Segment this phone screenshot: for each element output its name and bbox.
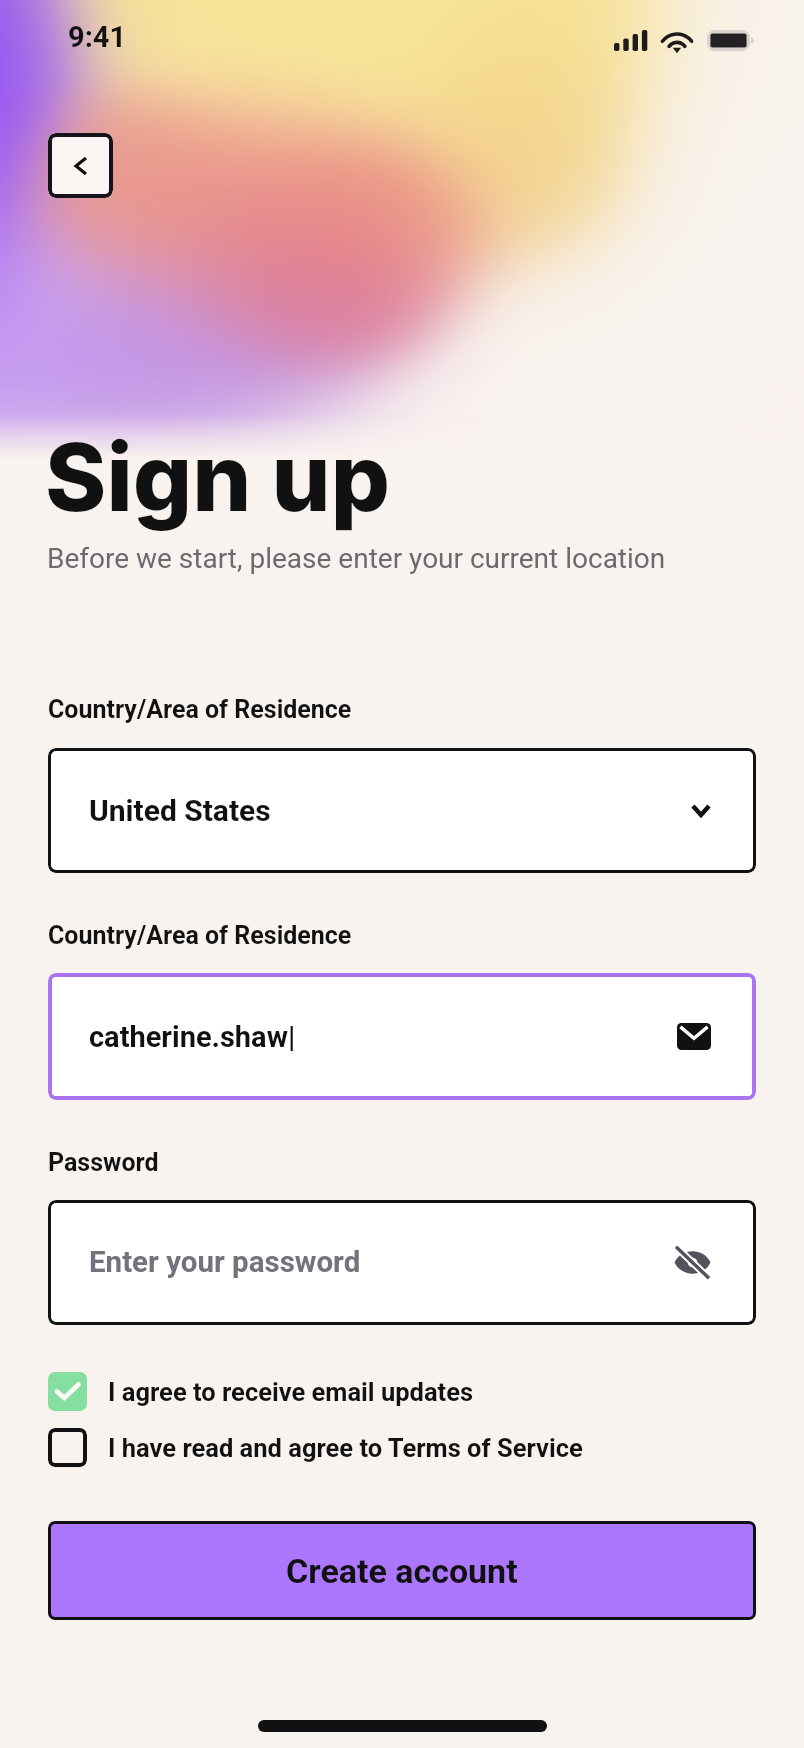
other: Email — [677, 1023, 711, 1050]
staticText: Create account — [286, 1551, 518, 1591]
staticText: Before we start, please enter your curre… — [47, 542, 666, 575]
staticText: Country/Area of Residence — [48, 695, 352, 724]
staticText: Enter your password — [89, 1245, 361, 1280]
button[interactable]: I agree to receive email updates — [48, 1372, 474, 1411]
other: Expand country list — [691, 804, 711, 817]
staticText: catherine.shaw| — [89, 1020, 296, 1054]
staticText: Sign up — [45, 421, 390, 534]
button[interactable]: United States — [48, 748, 756, 873]
button[interactable]: I have read and agree to Terms of Servic… — [48, 1428, 583, 1467]
staticText: I have read and agree to Terms of Servic… — [108, 1433, 583, 1463]
button[interactable]: Enter your password — [48, 1200, 756, 1325]
staticText: 9:41 — [68, 20, 127, 54]
staticText: Country/Area of Residence — [48, 921, 352, 950]
staticText: Password — [48, 1148, 159, 1177]
button[interactable]: catherine.shaw| — [48, 973, 756, 1100]
button[interactable]: Back — [48, 133, 113, 198]
button[interactable]: Create account — [48, 1521, 756, 1620]
staticText: United States — [89, 793, 271, 828]
other: Show password — [674, 1247, 711, 1278]
staticText: I agree to receive email updates — [108, 1377, 474, 1407]
